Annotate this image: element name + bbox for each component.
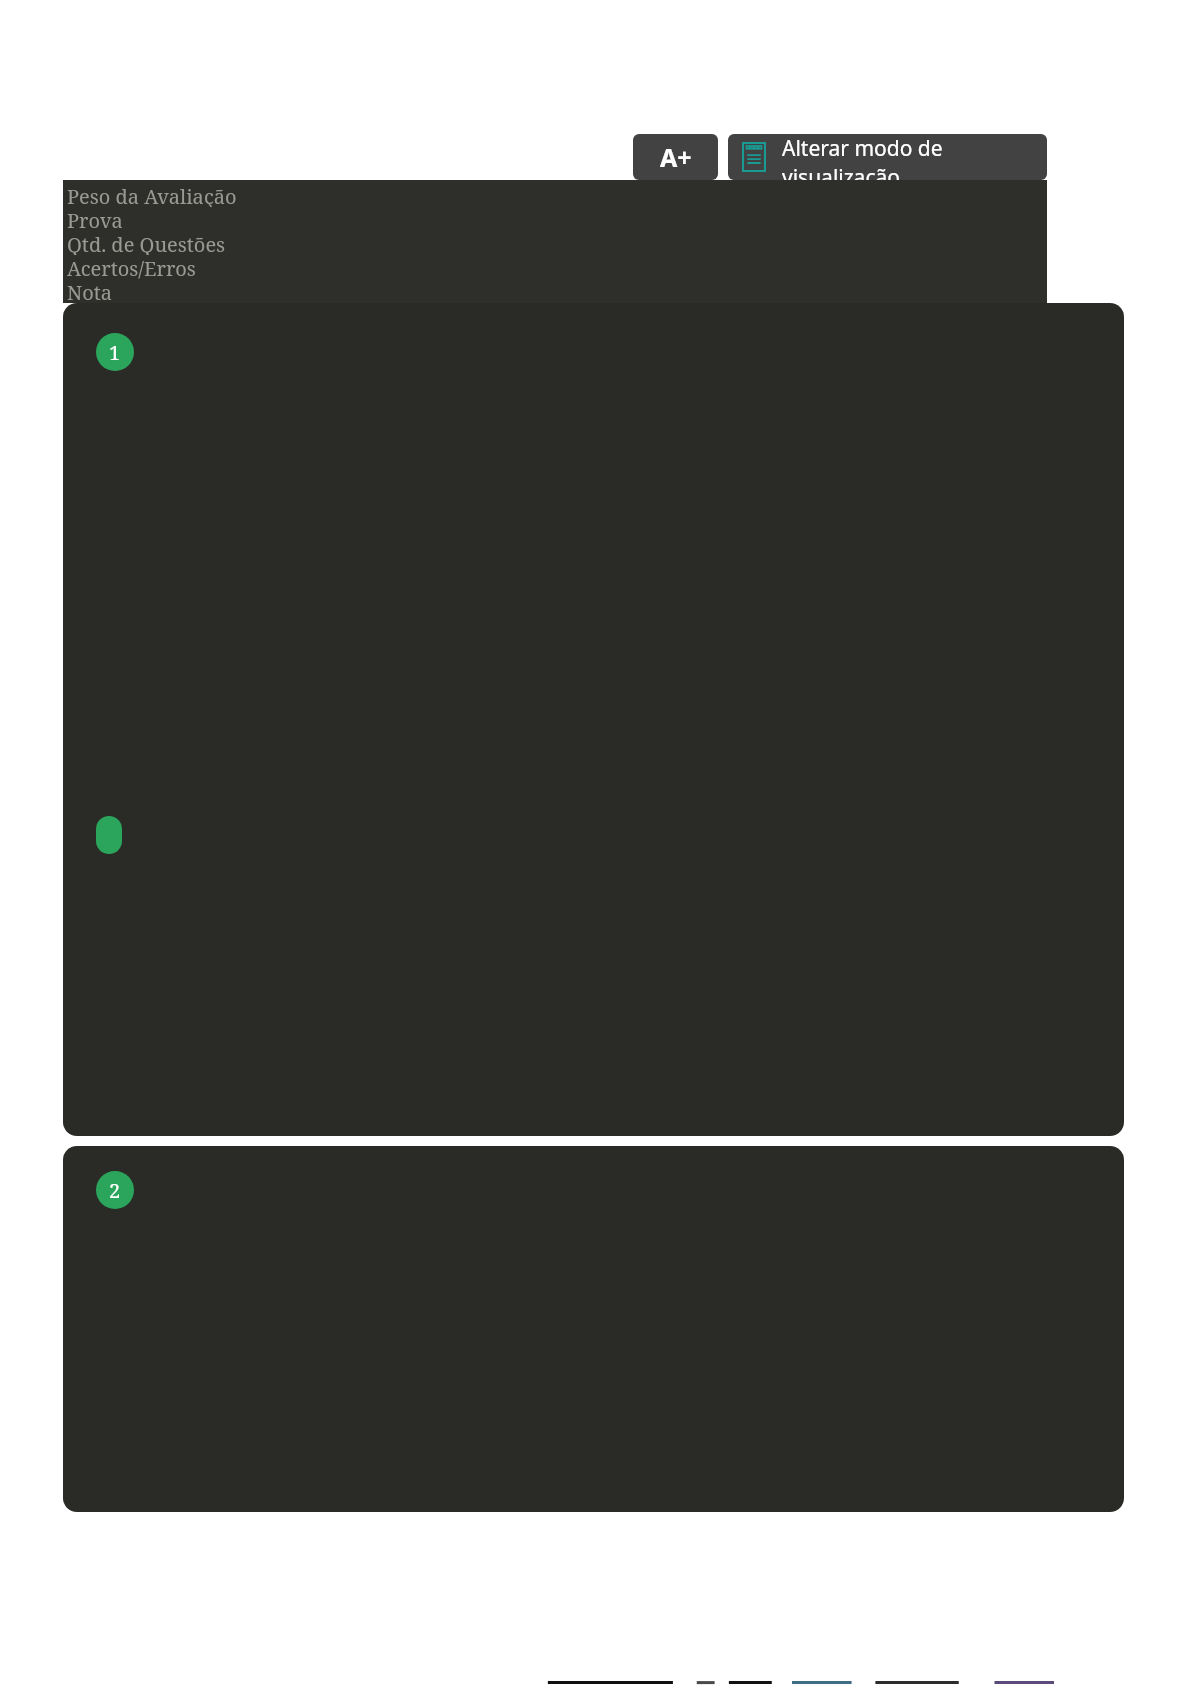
staticText: 1 — [109, 339, 121, 366]
button[interactable]: Alterar modo de visualização — [728, 134, 1047, 180]
other: Alterar modo de visualização — [742, 142, 766, 172]
staticText: Nota — [67, 279, 113, 303]
button[interactable]: 1 — [63, 303, 1124, 1136]
staticText: Qtd. de Questões — [67, 231, 226, 255]
button[interactable]: 2 — [63, 1146, 1124, 1512]
staticText: Acertos/Erros — [67, 255, 196, 279]
button[interactable]: A+ — [633, 134, 718, 180]
staticText: Peso da Avaliação — [67, 183, 237, 207]
staticText: 2 — [109, 1177, 121, 1204]
staticText: Prova — [67, 207, 123, 231]
staticText: A+ — [660, 140, 692, 174]
staticText: Alterar modo de visualização — [782, 134, 1033, 180]
